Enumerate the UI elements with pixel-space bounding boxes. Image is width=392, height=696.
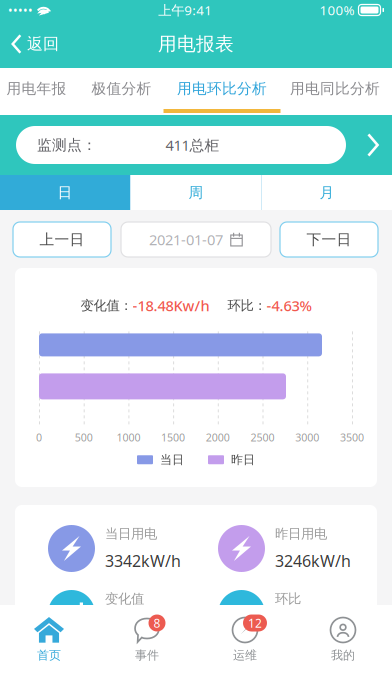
button[interactable]: 下一个 bbox=[362, 126, 384, 164]
button[interactable]: 下一日 bbox=[280, 222, 378, 257]
staticText: 变化值： bbox=[80, 297, 132, 314]
staticText: 环比 bbox=[275, 591, 301, 607]
staticText: 2500 bbox=[250, 430, 274, 444]
staticText: 8 bbox=[153, 615, 160, 631]
staticText: 411总柜 bbox=[165, 135, 219, 155]
staticText: 1000 bbox=[116, 430, 140, 444]
staticText: 12 bbox=[248, 615, 262, 631]
staticText: 用电同比分析 bbox=[290, 79, 380, 97]
staticText: 用电年报 bbox=[6, 79, 66, 97]
staticText: -4.63% bbox=[266, 296, 311, 315]
button[interactable]: 上一日 bbox=[13, 222, 111, 257]
staticText: 0 bbox=[36, 430, 42, 444]
staticText: 当日 bbox=[160, 452, 184, 467]
staticText: 返回 bbox=[27, 34, 59, 54]
staticText: 500 bbox=[75, 430, 93, 444]
staticText: 监测点： bbox=[37, 136, 97, 154]
staticText: 日 bbox=[57, 183, 72, 201]
staticText: 用电报表 bbox=[158, 32, 234, 55]
staticText: 月 bbox=[319, 183, 334, 201]
button[interactable]: 12 bbox=[196, 605, 294, 696]
button[interactable]: 8 bbox=[98, 605, 196, 696]
staticText: 当日用电 bbox=[105, 526, 157, 542]
staticText: 上一日 bbox=[39, 230, 84, 248]
staticText: 昨日 bbox=[231, 452, 255, 467]
staticText: 事件 bbox=[135, 648, 159, 663]
staticText: 100% bbox=[319, 1, 354, 19]
staticText: 3500 bbox=[340, 430, 364, 444]
staticText: 周 bbox=[188, 183, 203, 201]
button[interactable]: 首页 bbox=[0, 605, 98, 696]
staticText: ••••• bbox=[8, 2, 33, 18]
staticText: 2021-01-07 bbox=[149, 230, 223, 249]
staticText: 1500 bbox=[161, 430, 185, 444]
button[interactable]: 周 bbox=[131, 175, 261, 210]
staticText: 2000 bbox=[206, 430, 230, 444]
staticText: 3000 bbox=[295, 430, 319, 444]
button[interactable]: 日 bbox=[0, 175, 130, 210]
button[interactable]: 2021-01-07 bbox=[121, 222, 271, 257]
staticText: 运维 bbox=[233, 648, 257, 663]
staticText: 变化值 bbox=[105, 591, 144, 607]
staticText: 我的 bbox=[331, 648, 355, 663]
button[interactable]: 用电同比分析 bbox=[283, 68, 387, 115]
button[interactable]: 返回 bbox=[0, 20, 73, 68]
button[interactable]: 用电年报 bbox=[0, 68, 73, 115]
button[interactable]: 用电环比分析 bbox=[170, 68, 274, 115]
staticText: 极值分析 bbox=[91, 79, 151, 97]
staticText: 首页 bbox=[37, 648, 61, 663]
staticText: 3342kW/h bbox=[105, 550, 181, 571]
button[interactable]: 我的 bbox=[294, 605, 392, 696]
staticText: 上午9:41 bbox=[158, 1, 212, 19]
staticText: 环比： bbox=[227, 297, 266, 314]
button[interactable]: 月 bbox=[262, 175, 392, 210]
button[interactable]: 极值分析 bbox=[85, 68, 158, 115]
staticText: 3246kW/h bbox=[275, 550, 351, 571]
staticText: -18.48Kw/h bbox=[132, 296, 209, 315]
button[interactable]: 监测点： bbox=[16, 126, 346, 164]
staticText: 昨日用电 bbox=[275, 526, 327, 542]
staticText: -18.48kW/h bbox=[105, 615, 190, 636]
staticText: 下一日 bbox=[306, 230, 351, 248]
staticText: 用电环比分析 bbox=[177, 79, 267, 97]
